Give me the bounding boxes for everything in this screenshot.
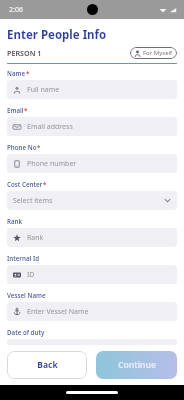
staticText: * bbox=[26, 69, 30, 77]
staticText: Email address bbox=[27, 122, 171, 132]
button[interactable]: Enter Vessel Name bbox=[7, 302, 177, 321]
button[interactable]: Phone number bbox=[7, 154, 177, 173]
staticText: Internal Id bbox=[7, 254, 40, 262]
staticText: Vessel Name bbox=[7, 291, 46, 299]
staticText: Date of duty bbox=[7, 328, 45, 336]
staticText: Rank bbox=[7, 217, 23, 225]
staticText: Enter Vessel Name bbox=[27, 307, 171, 317]
staticText: Name bbox=[7, 69, 26, 77]
staticText: Rank bbox=[27, 233, 171, 243]
staticText: Cost Center bbox=[7, 180, 43, 188]
staticText: Enter People Info bbox=[7, 27, 107, 43]
staticText: PERSON 1 bbox=[7, 48, 130, 58]
button[interactable]: Email address bbox=[7, 117, 177, 136]
button[interactable]: For Myself bbox=[130, 47, 177, 59]
button[interactable]: ID bbox=[7, 265, 177, 284]
button[interactable]: Full name bbox=[7, 80, 177, 99]
staticText: Phone number bbox=[27, 159, 171, 169]
button[interactable]: Rank bbox=[7, 228, 177, 247]
button[interactable]: Back bbox=[7, 351, 87, 379]
staticText: Continue bbox=[118, 359, 156, 371]
staticText: Full name bbox=[27, 85, 171, 95]
staticText: 2:06 bbox=[9, 5, 23, 15]
button[interactable]: Select items bbox=[7, 191, 177, 210]
staticText: * bbox=[43, 180, 47, 188]
staticText: Email bbox=[7, 106, 24, 114]
staticText: * bbox=[37, 143, 41, 151]
staticText: Back bbox=[37, 359, 58, 371]
button[interactable]: Continue bbox=[96, 351, 177, 379]
staticText: For Myself bbox=[143, 49, 173, 57]
staticText: * bbox=[24, 106, 28, 114]
staticText: ID bbox=[27, 270, 171, 280]
staticText: Select items bbox=[13, 196, 164, 206]
staticText: Phone No bbox=[7, 143, 37, 151]
